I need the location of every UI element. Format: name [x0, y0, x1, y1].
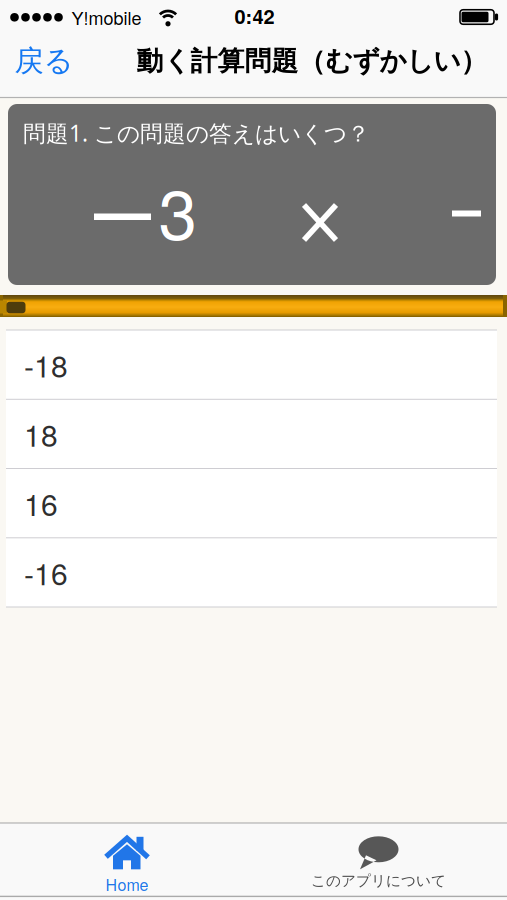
button[interactable]: 16 [6, 469, 497, 538]
staticText: このアプリについて [311, 872, 446, 890]
staticText: -16 [24, 551, 68, 594]
staticText: 3 [158, 160, 197, 260]
button[interactable]: 18 [6, 399, 497, 468]
staticText: Y!mobile [71, 4, 141, 30]
staticText: 0:42 [234, 1, 274, 30]
staticText: Home [105, 872, 148, 895]
button[interactable]: -18 [6, 330, 497, 399]
button[interactable]: Home [0, 824, 253, 900]
staticText: 戻る [14, 43, 73, 79]
staticText: 18 [24, 412, 58, 455]
button[interactable]: 戻る [6, 33, 82, 89]
button[interactable]: このアプリについて [253, 824, 506, 900]
staticText: 問題1. この問題の答えはいくつ？ [23, 118, 370, 148]
staticText: 動く計算問題（むずかしい） [136, 45, 487, 77]
staticText: 16 [24, 482, 58, 525]
staticText: -18 [24, 343, 68, 386]
button[interactable]: -16 [6, 538, 497, 607]
